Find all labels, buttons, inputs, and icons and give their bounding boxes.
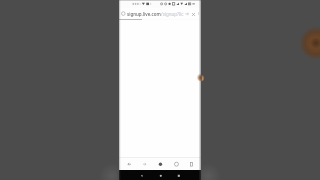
button[interactable]: Back bbox=[137, 171, 146, 180]
button[interactable]: Reload bbox=[170, 158, 182, 170]
button[interactable]: Back bbox=[123, 158, 135, 170]
staticText: /signup?lic bbox=[161, 11, 184, 17]
button[interactable]: Recents bbox=[174, 171, 183, 180]
button[interactable]: Home bbox=[154, 158, 166, 170]
button[interactable]: More options bbox=[196, 10, 201, 17]
staticText: signup.live.com bbox=[127, 11, 161, 17]
button[interactable]: Home bbox=[156, 171, 165, 180]
button[interactable]: Close tab bbox=[190, 11, 196, 17]
button[interactable]: Forward bbox=[138, 158, 150, 170]
button[interactable]: Tabs bbox=[185, 158, 197, 170]
button[interactable]: Go forward bbox=[184, 11, 190, 17]
